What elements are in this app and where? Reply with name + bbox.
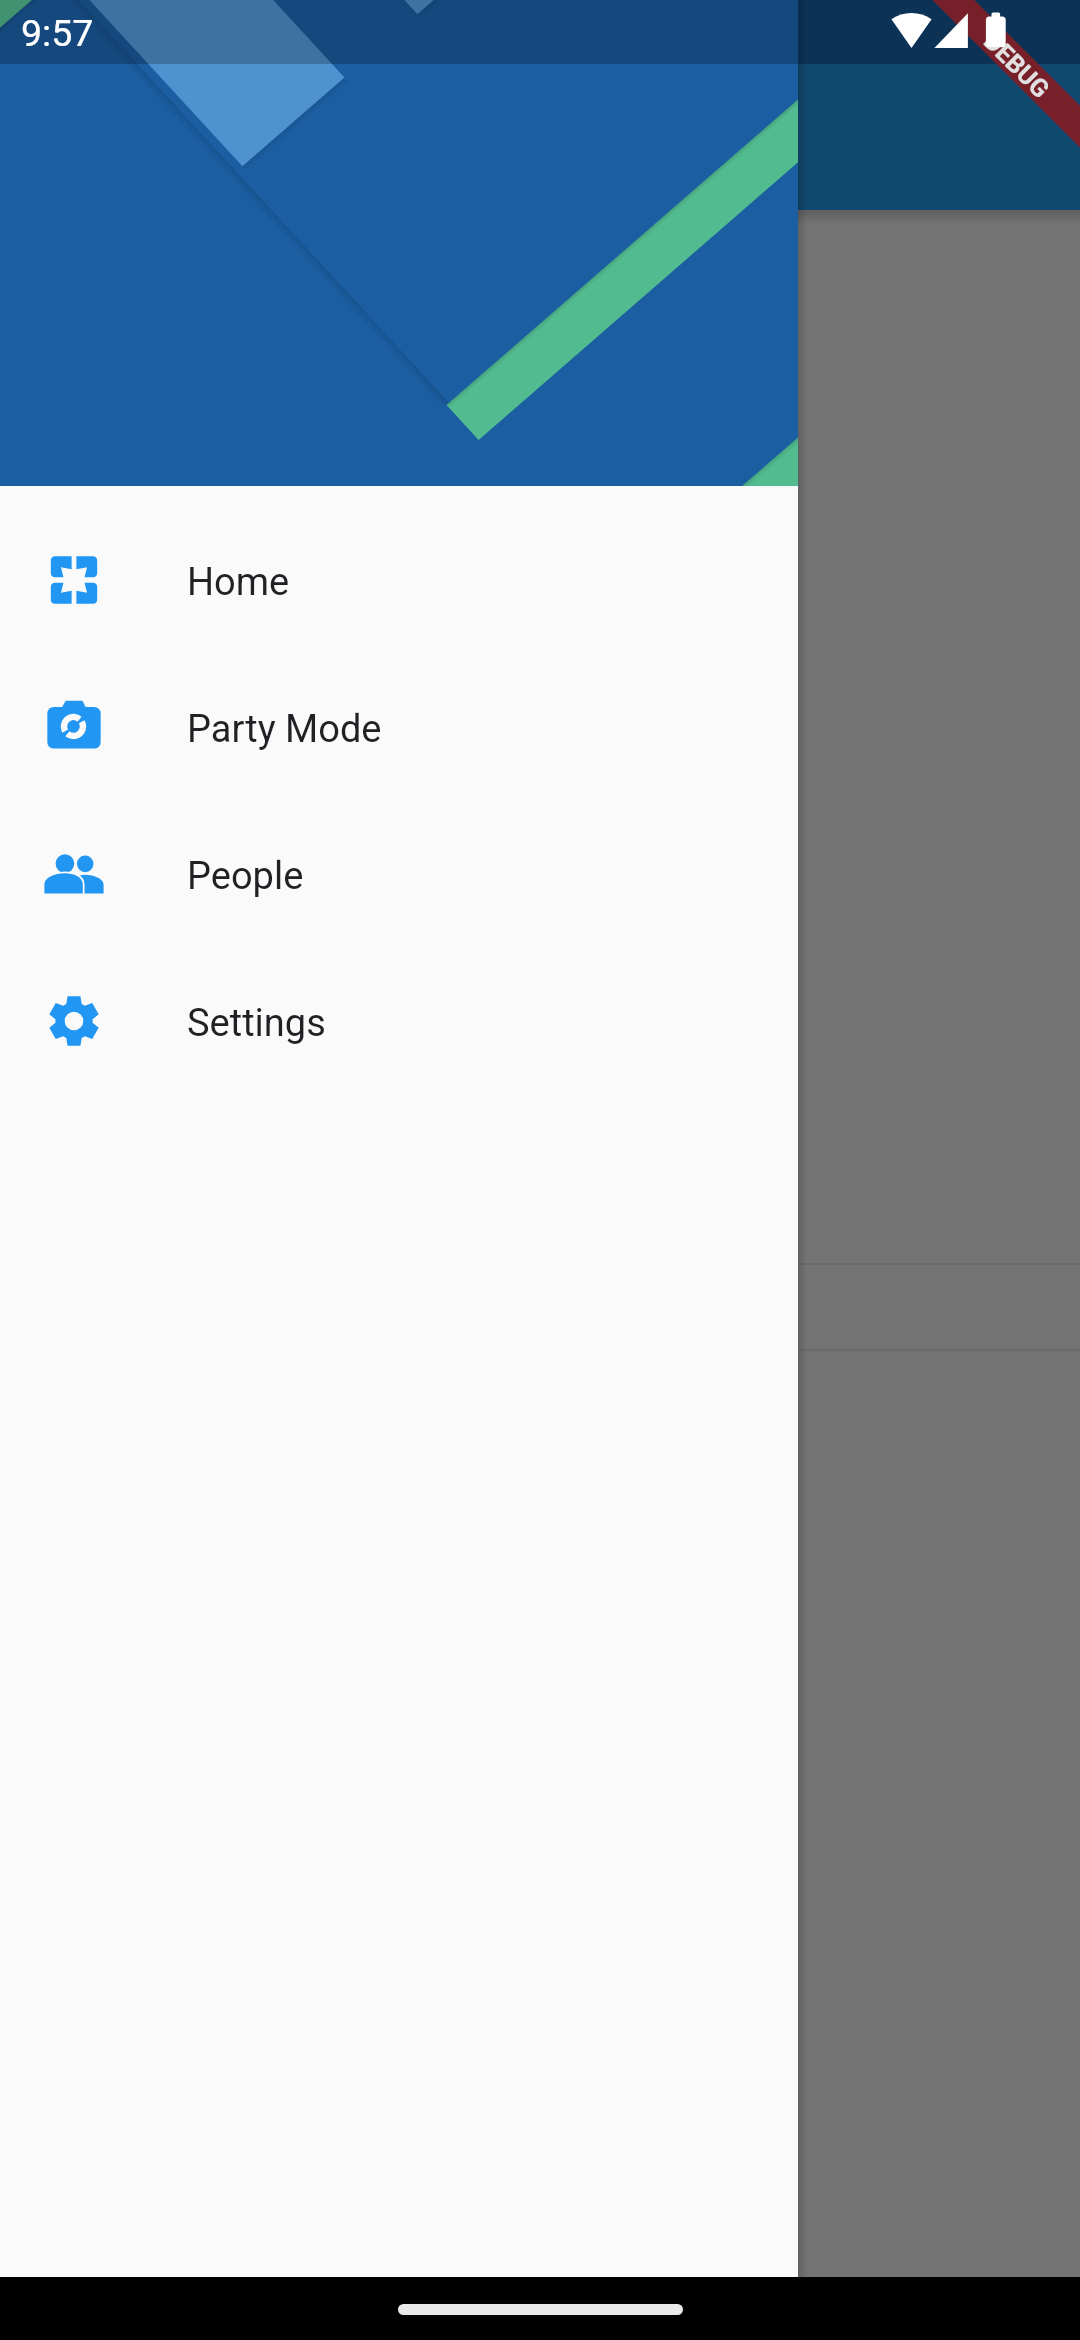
staticText: 9:57	[21, 11, 94, 55]
button[interactable]: People	[0, 800, 798, 947]
staticText: Party Mode	[187, 707, 382, 752]
button[interactable]: Home	[0, 506, 798, 653]
button[interactable]: Close navigation drawer	[798, 0, 1080, 2340]
button[interactable]: Settings	[0, 947, 798, 1094]
button[interactable]: Party Mode	[0, 653, 798, 800]
staticText: Home	[187, 560, 290, 605]
staticText: DEBUG	[978, 27, 1055, 104]
staticText: People	[187, 854, 304, 899]
staticText: Settings	[187, 1001, 326, 1046]
